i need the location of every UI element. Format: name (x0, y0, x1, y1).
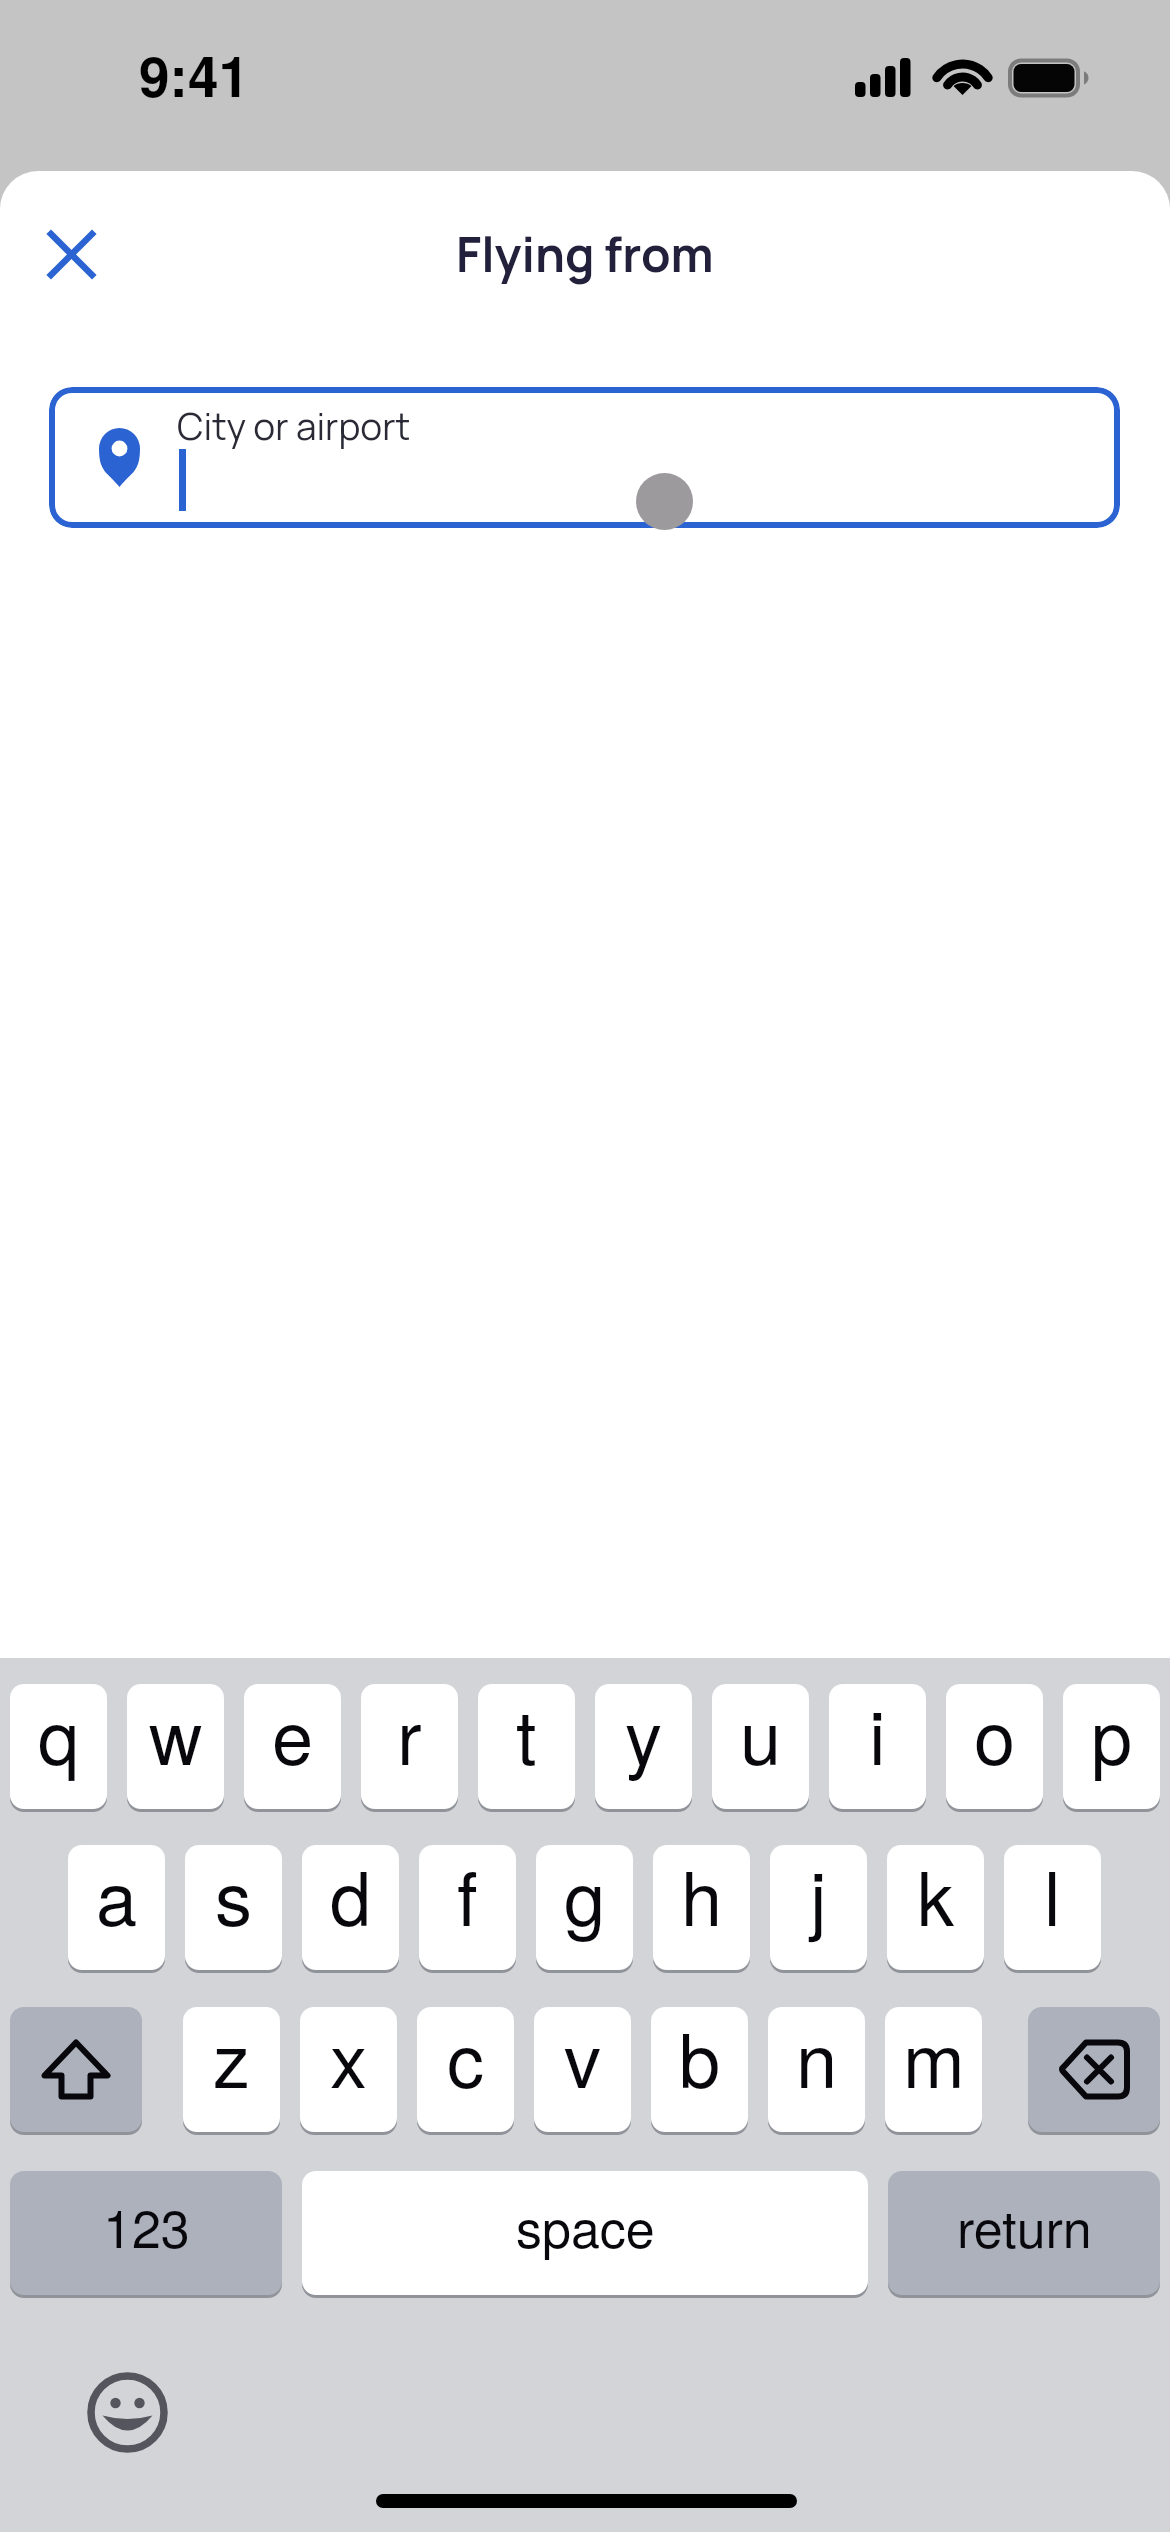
staticText: x (330, 2007, 367, 2109)
staticText: y (625, 1684, 662, 1786)
button[interactable]: a (68, 1845, 165, 1970)
staticText: l (1044, 1845, 1061, 1947)
staticText: return (957, 2188, 1092, 2262)
button[interactable]: b (651, 2007, 748, 2132)
button[interactable]: m (885, 2007, 982, 2132)
staticText: g (564, 1845, 606, 1947)
button[interactable]: Backspace (1028, 2007, 1160, 2132)
button[interactable]: v (534, 2007, 631, 2132)
button[interactable]: g (536, 1845, 633, 1970)
button[interactable]: e (244, 1684, 341, 1809)
button[interactable]: l (1004, 1845, 1101, 1970)
button[interactable]: q (10, 1684, 107, 1809)
staticText: space (516, 2188, 655, 2262)
staticText: t (516, 1684, 537, 1786)
staticText: z (213, 2007, 250, 2109)
staticText: o (974, 1684, 1016, 1786)
button[interactable]: City or airport (49, 387, 1120, 528)
staticText: v (564, 2007, 601, 2109)
button[interactable]: s (185, 1845, 282, 1970)
button[interactable]: c (417, 2007, 514, 2132)
button[interactable]: n (768, 2007, 865, 2132)
button[interactable]: i (829, 1684, 926, 1809)
staticText: Flying from (456, 221, 714, 287)
staticText: s (215, 1845, 252, 1947)
button[interactable]: j (770, 1845, 867, 1970)
staticText: h (681, 1845, 723, 1947)
button[interactable]: return (888, 2171, 1160, 2295)
button[interactable]: u (712, 1684, 809, 1809)
staticText: e (272, 1684, 314, 1786)
button[interactable]: f (419, 1845, 516, 1970)
button[interactable]: h (653, 1845, 750, 1970)
staticText: q (38, 1684, 80, 1786)
staticText: 123 (103, 2188, 190, 2262)
button[interactable]: t (478, 1684, 575, 1809)
staticText: b (679, 2007, 721, 2109)
button[interactable]: y (595, 1684, 692, 1809)
button[interactable]: p (1063, 1684, 1160, 1809)
button[interactable]: w (127, 1684, 224, 1809)
staticText: i (869, 1684, 886, 1786)
staticText: f (457, 1845, 478, 1947)
staticText: w (149, 1684, 203, 1786)
staticText: j (810, 1845, 827, 1947)
button[interactable]: space (302, 2171, 868, 2295)
staticText: d (330, 1845, 372, 1947)
staticText: a (96, 1845, 138, 1947)
button[interactable]: Close (23, 206, 119, 302)
button[interactable]: r (361, 1684, 458, 1809)
button[interactable]: 123 (10, 2171, 282, 2295)
staticText: k (917, 1845, 954, 1947)
staticText: r (397, 1684, 422, 1786)
staticText: 9:41 (139, 35, 250, 114)
button[interactable]: o (946, 1684, 1043, 1809)
button[interactable]: x (300, 2007, 397, 2132)
staticText: City or airport (177, 401, 411, 452)
staticText: u (740, 1684, 782, 1786)
button[interactable]: d (302, 1845, 399, 1970)
staticText: n (796, 2007, 838, 2109)
staticText: c (447, 2007, 484, 2109)
button[interactable]: k (887, 1845, 984, 1970)
staticText: p (1091, 1684, 1133, 1786)
button[interactable]: z (183, 2007, 280, 2132)
staticText: m (903, 2007, 965, 2109)
button[interactable]: Emoji keyboard (87, 2372, 168, 2453)
button[interactable]: Shift (10, 2007, 142, 2132)
